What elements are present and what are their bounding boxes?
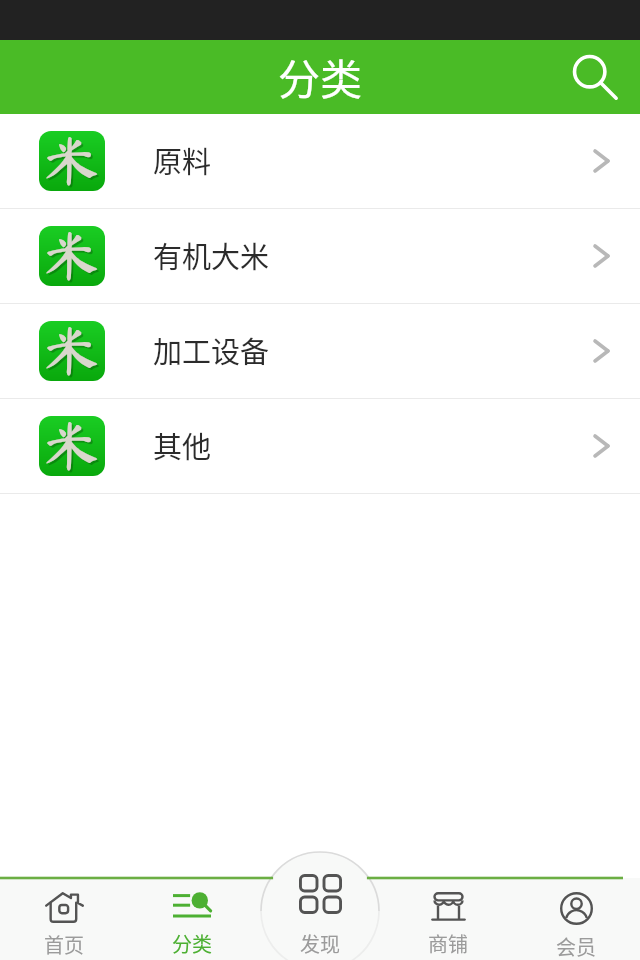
button[interactable]: Categories xyxy=(128,878,256,960)
staticText: 发现 xyxy=(300,929,340,958)
staticText: 米 xyxy=(46,134,102,190)
button[interactable]: Member xyxy=(512,878,640,960)
staticText: 米 xyxy=(46,419,102,475)
button[interactable]: 米 xyxy=(0,304,640,398)
staticText: 会员 xyxy=(556,932,596,960)
staticText: 分类 xyxy=(278,46,363,107)
button[interactable]: 发现 xyxy=(256,852,384,960)
staticText: 商铺 xyxy=(428,929,468,958)
staticText: 有机大米 xyxy=(153,234,270,276)
staticText: 米 xyxy=(44,227,100,283)
staticText: 米 xyxy=(44,417,100,473)
staticText: 米 xyxy=(44,132,100,188)
staticText: 其他 xyxy=(153,424,212,466)
button[interactable]: Home xyxy=(0,878,128,960)
staticText: 米 xyxy=(46,229,102,285)
button[interactable]: 米 xyxy=(0,209,640,303)
staticText: 原料 xyxy=(153,139,212,181)
staticText: 首页 xyxy=(44,930,84,959)
staticText: 加工设备 xyxy=(153,329,270,371)
button[interactable]: 米 xyxy=(0,399,640,493)
staticText: 米 xyxy=(46,324,102,380)
staticText: 米 xyxy=(44,322,100,378)
staticText: 分类 xyxy=(172,929,212,958)
button[interactable]: Shops xyxy=(384,878,512,960)
button[interactable]: 米 xyxy=(0,114,640,208)
button[interactable]: Search xyxy=(564,46,626,108)
